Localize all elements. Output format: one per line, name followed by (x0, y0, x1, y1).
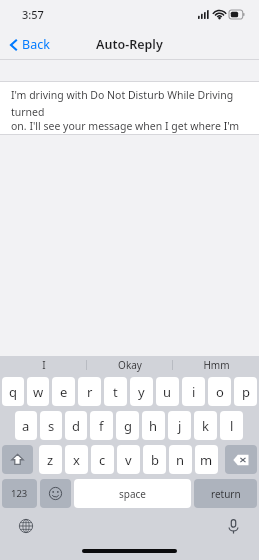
button[interactable]: n (169, 445, 192, 474)
button[interactable]: g (116, 411, 139, 440)
staticText: return (211, 487, 241, 501)
button[interactable]: Back (6, 33, 54, 56)
staticText: u (163, 383, 172, 401)
staticText: I'm driving with Do Not Disturb While Dr… (11, 88, 250, 119)
button[interactable]: Emoji (40, 479, 71, 508)
button[interactable]: space (74, 479, 191, 508)
button[interactable]: i (182, 377, 205, 406)
button[interactable]: f (90, 411, 113, 440)
staticText: h (149, 417, 158, 435)
staticText: c (99, 451, 106, 469)
staticText: x (73, 451, 80, 469)
staticText: Back (22, 36, 50, 53)
button[interactable]: w (27, 377, 49, 406)
staticText: 123 (11, 487, 28, 500)
button[interactable]: e (52, 377, 75, 406)
button[interactable]: o (208, 377, 231, 406)
staticText: i (192, 383, 196, 401)
staticText: o (216, 383, 224, 401)
staticText: m (200, 451, 213, 469)
staticText: g (124, 417, 132, 435)
button[interactable]: h (142, 411, 165, 440)
staticText: Auto-Reply (96, 36, 163, 53)
button[interactable]: m (195, 445, 218, 474)
staticText: p (242, 383, 250, 401)
button[interactable]: c (91, 445, 114, 474)
button[interactable]: Backspace (225, 445, 257, 474)
button[interactable]: s (40, 411, 62, 440)
button[interactable]: j (168, 411, 191, 440)
staticText: Okay (118, 358, 142, 372)
button[interactable]: Shift (2, 445, 33, 474)
button[interactable]: z (39, 445, 62, 474)
button[interactable]: x (65, 445, 88, 474)
button[interactable]: Dictate (223, 516, 243, 536)
button[interactable]: a (15, 411, 37, 440)
button[interactable]: Change keyboard (16, 516, 36, 536)
button[interactable]: r (78, 377, 101, 406)
staticText: q (9, 383, 17, 401)
staticText: a (22, 417, 30, 435)
staticText: t (113, 383, 118, 401)
staticText: s (48, 417, 55, 435)
staticText: y (138, 383, 145, 401)
button[interactable]: Hmm (173, 356, 259, 374)
staticText: e (60, 383, 68, 401)
staticText: k (202, 417, 209, 435)
button[interactable]: I (0, 356, 87, 374)
button[interactable]: 123 (2, 479, 37, 508)
staticText: r (87, 383, 93, 401)
button[interactable]: y (130, 377, 153, 406)
staticText: w (33, 383, 44, 401)
button[interactable]: u (156, 377, 179, 406)
button[interactable]: v (117, 445, 140, 474)
staticText: I (42, 358, 46, 372)
staticText: 3:57 (22, 7, 44, 22)
button[interactable]: k (194, 411, 217, 440)
button[interactable]: Okay (87, 356, 173, 374)
staticText: j (178, 417, 182, 435)
button[interactable]: p (234, 377, 257, 406)
button[interactable]: q (2, 377, 24, 406)
button[interactable]: t (104, 377, 127, 406)
staticText: b (151, 451, 159, 469)
staticText: d (72, 417, 80, 435)
button[interactable]: d (65, 411, 87, 440)
staticText: Hmm (203, 358, 230, 372)
staticText: l (230, 417, 234, 435)
staticText: f (99, 417, 104, 435)
button[interactable]: return (194, 479, 257, 508)
button[interactable]: b (143, 445, 166, 474)
staticText: space (119, 487, 146, 501)
staticText: on. I'll see your message when I get whe… (11, 119, 250, 135)
button[interactable]: I'm driving with Do Not Disturb While Dr… (0, 81, 259, 135)
staticText: v (125, 451, 132, 469)
button[interactable]: l (220, 411, 243, 440)
staticText: n (176, 451, 185, 469)
staticText: z (47, 451, 54, 469)
